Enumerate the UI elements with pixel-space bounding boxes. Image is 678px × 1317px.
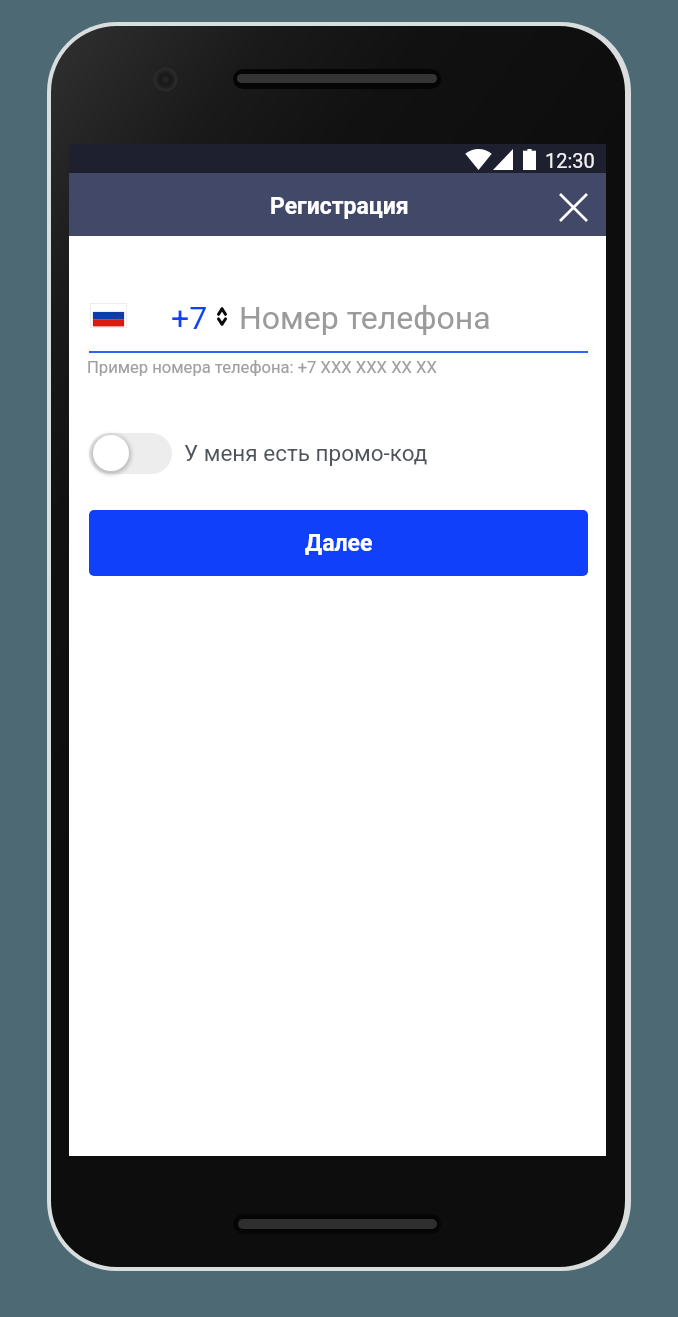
- staticText: 12:30: [545, 149, 595, 172]
- staticText: +7: [171, 299, 208, 337]
- staticText: Номер телефона: [239, 299, 491, 337]
- button[interactable]: Close registration: [550, 184, 597, 231]
- staticText: У меня есть промо-код: [184, 440, 428, 466]
- button[interactable]: Далее: [89, 510, 588, 576]
- staticText: Регистрация: [270, 193, 409, 220]
- staticText: Далее: [305, 530, 373, 557]
- button[interactable]: У меня есть промо-код: [89, 432, 428, 474]
- staticText: Пример номера телефона: +7 XXX XXX XX XX: [87, 358, 437, 377]
